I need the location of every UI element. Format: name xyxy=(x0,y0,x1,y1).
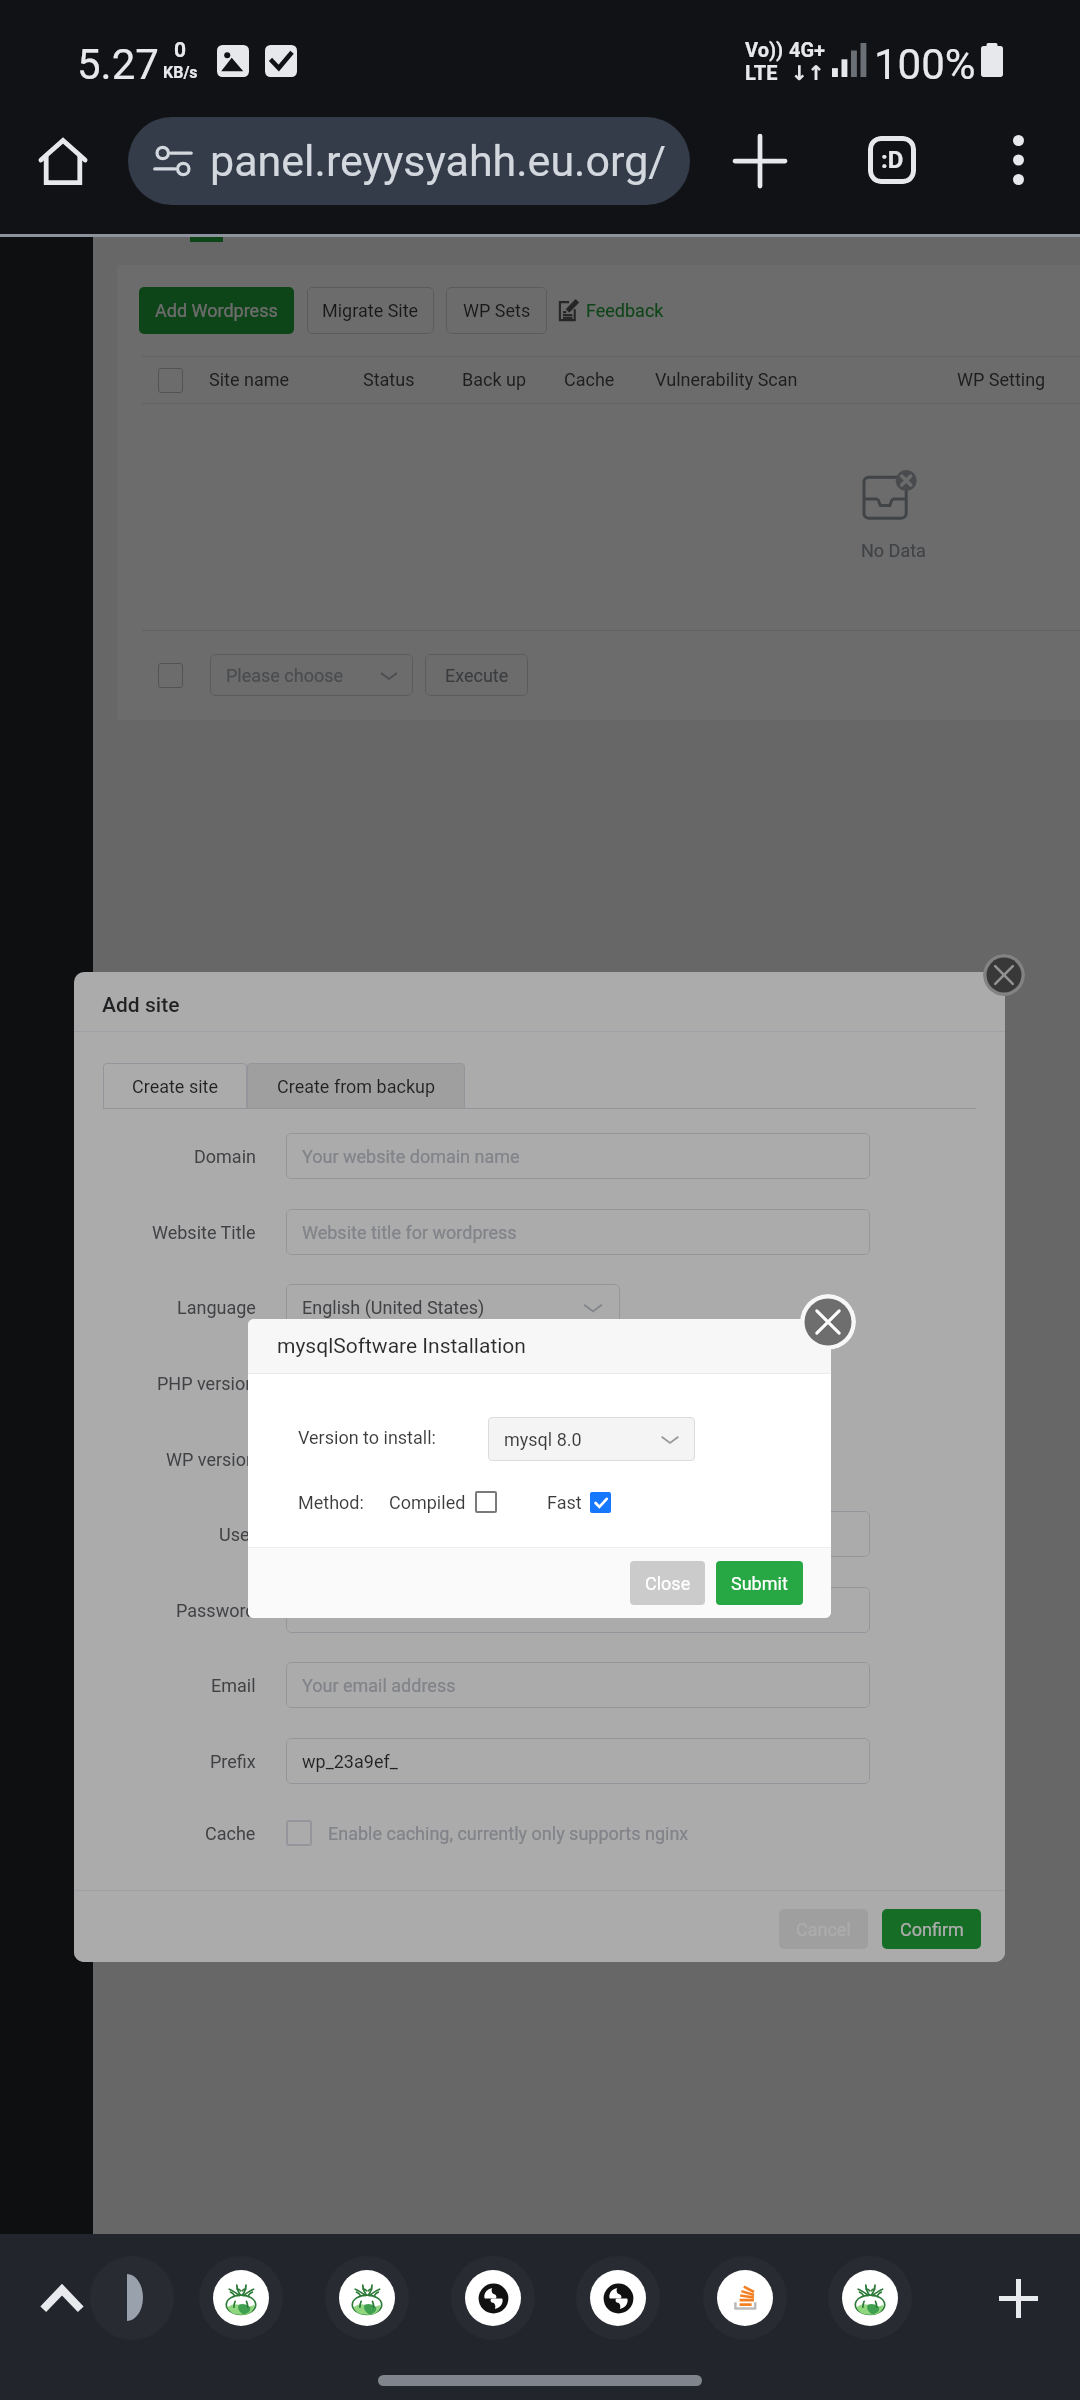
staticText: WP Sets xyxy=(463,300,531,321)
button[interactable]: WP Sets xyxy=(446,287,547,334)
button[interactable] xyxy=(286,1360,620,1406)
staticText: Email xyxy=(211,1675,256,1696)
staticText: ↓↑ xyxy=(791,61,825,84)
button[interactable]: Confirm xyxy=(882,1909,981,1949)
button[interactable]: Tab xyxy=(842,2270,898,2326)
staticText: Close xyxy=(645,1573,691,1594)
staticText: wp_23a9ef_ xyxy=(302,1751,398,1772)
staticText: Version to install: xyxy=(298,1427,436,1448)
staticText: mysql 8.0 xyxy=(504,1429,582,1450)
button[interactable] xyxy=(286,1587,870,1633)
staticText: Create site xyxy=(132,1076,218,1097)
staticText: Confirm xyxy=(900,1919,964,1940)
button[interactable] xyxy=(158,368,183,393)
staticText: Site name xyxy=(209,369,290,390)
button[interactable]: Expand tab strip xyxy=(34,2270,90,2326)
button[interactable]: Fast xyxy=(547,1487,611,1517)
staticText: panel.reyysyahh.eu.org/ xyxy=(210,136,667,186)
staticText: WP version xyxy=(166,1449,256,1470)
button[interactable]: mysql 8.0 xyxy=(488,1417,695,1461)
staticText: Fast xyxy=(547,1492,582,1513)
staticText: LTE xyxy=(745,61,778,84)
staticText: WP Setting xyxy=(957,369,1046,390)
button[interactable]: Switch tabs xyxy=(857,125,927,195)
staticText: Submit xyxy=(731,1573,788,1594)
staticText: Your website domain name xyxy=(302,1146,520,1167)
button[interactable]: New tab xyxy=(990,2270,1046,2326)
button[interactable]: Close installation dialog xyxy=(800,1294,856,1350)
staticText: Enable caching, currently only supports … xyxy=(328,1823,689,1844)
button[interactable]: Create from backup xyxy=(247,1063,465,1109)
button[interactable]: Feedback xyxy=(558,287,664,334)
staticText: Cache xyxy=(205,1823,256,1844)
button[interactable]: Compiled xyxy=(389,1487,497,1517)
staticText: User xyxy=(219,1524,256,1545)
staticText: 4G+ xyxy=(789,38,826,61)
staticText: Please choose xyxy=(226,665,344,686)
button[interactable]: Tab xyxy=(213,2270,269,2326)
staticText: Domain xyxy=(194,1146,256,1167)
button[interactable]: English (United States) xyxy=(286,1284,620,1330)
staticText: Status xyxy=(363,369,415,390)
staticText: Execute xyxy=(445,665,509,686)
staticText: Your email address xyxy=(302,1675,456,1696)
staticText: Cancel xyxy=(796,1919,851,1940)
button[interactable]: panel.reyysyahh.eu.org/ xyxy=(128,117,690,205)
staticText: KB/s xyxy=(163,63,198,82)
button[interactable]: Cancel xyxy=(779,1909,868,1949)
staticText: Migrate Site xyxy=(322,300,419,321)
staticText: :D xyxy=(881,146,904,174)
staticText: Add site xyxy=(102,993,180,1018)
button[interactable]: Create site xyxy=(103,1063,247,1109)
staticText: Feedback xyxy=(586,300,664,321)
staticText: Vulnerability Scan xyxy=(655,369,798,390)
staticText: mysqlSoftware Installation xyxy=(277,1334,526,1359)
button[interactable]: Tab xyxy=(339,2270,395,2326)
button[interactable]: Home xyxy=(28,126,98,196)
button[interactable]: Tab xyxy=(590,2270,646,2326)
button[interactable]: Enable caching, currently only supports … xyxy=(286,1817,1005,1849)
staticText: Method: xyxy=(298,1492,364,1513)
staticText: English (United States) xyxy=(302,1297,485,1318)
button[interactable]: Execute xyxy=(425,654,528,696)
staticText: 5.27 xyxy=(77,40,159,89)
button[interactable]: Your email address xyxy=(286,1662,870,1708)
button[interactable] xyxy=(158,663,183,688)
staticText: Website title for wordpress xyxy=(302,1222,517,1243)
button[interactable]: Website title for wordpress xyxy=(286,1209,870,1255)
button[interactable]: Tab xyxy=(717,2270,773,2326)
button[interactable]: More options xyxy=(985,127,1051,193)
staticText: Create from backup xyxy=(277,1076,436,1097)
staticText: Password xyxy=(176,1600,256,1621)
button[interactable]: Submit xyxy=(716,1561,803,1605)
button[interactable]: wp_23a9ef_ xyxy=(286,1738,870,1784)
button[interactable]: Migrate Site xyxy=(307,287,434,334)
staticText: Prefix xyxy=(210,1751,256,1772)
staticText: No Data xyxy=(861,540,926,561)
staticText: 0 xyxy=(174,38,187,63)
button[interactable]: Close xyxy=(630,1561,705,1605)
button[interactable] xyxy=(286,1511,870,1557)
staticText: Website Title xyxy=(152,1222,256,1243)
staticText: PHP version xyxy=(157,1373,256,1394)
button[interactable]: Close Add site dialog xyxy=(983,954,1025,996)
button[interactable]: Tab xyxy=(465,2270,521,2326)
staticText: 100% xyxy=(874,40,976,89)
button[interactable] xyxy=(286,1436,620,1482)
button[interactable]: New tab xyxy=(725,126,795,196)
button[interactable]: Please choose xyxy=(210,654,413,696)
staticText: Back up xyxy=(462,369,527,390)
staticText: Language xyxy=(177,1297,256,1318)
button[interactable]: Add Wordpress xyxy=(139,287,294,334)
staticText: Compiled xyxy=(389,1492,466,1513)
button[interactable]: Your website domain name xyxy=(286,1133,870,1179)
staticText: Add Wordpress xyxy=(155,300,278,321)
staticText: Vo)) xyxy=(745,38,784,61)
staticText: Cache xyxy=(564,369,615,390)
